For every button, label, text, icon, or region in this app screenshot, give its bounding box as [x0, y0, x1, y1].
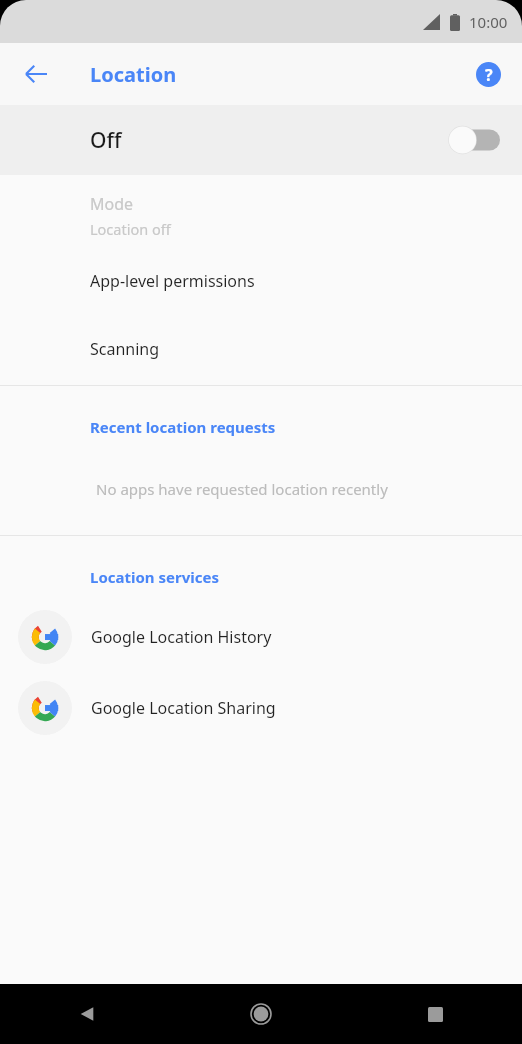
staticText: Location	[90, 61, 177, 88]
staticText: Location off	[90, 219, 171, 239]
staticText: Google Location Sharing	[91, 697, 276, 719]
staticText: No apps have requested location recently	[96, 479, 388, 499]
staticText: App-level permissions	[90, 270, 255, 292]
staticText: Google Location History	[91, 626, 272, 648]
staticText: Off	[90, 126, 122, 155]
button[interactable]: Back	[0, 984, 174, 1044]
staticText: Mode	[90, 193, 134, 215]
staticText: ?	[485, 64, 493, 86]
button[interactable]: Recent apps	[348, 984, 522, 1044]
button[interactable]: Recent location requests	[90, 417, 276, 437]
button[interactable]: Location services	[90, 567, 219, 587]
button[interactable]: Help	[468, 54, 508, 94]
button[interactable]: Google Location Sharing	[0, 672, 522, 743]
button[interactable]: Google Location History	[0, 601, 522, 672]
button[interactable]: Home	[174, 984, 348, 1044]
button[interactable]: App-level permissions	[0, 247, 522, 315]
button[interactable]: Back	[13, 51, 59, 97]
button[interactable]: Scanning	[0, 315, 522, 383]
staticText: Scanning	[90, 338, 160, 360]
staticText: 10:00	[469, 12, 508, 32]
button[interactable]: Off	[0, 105, 522, 175]
button[interactable]: Mode	[0, 175, 522, 247]
